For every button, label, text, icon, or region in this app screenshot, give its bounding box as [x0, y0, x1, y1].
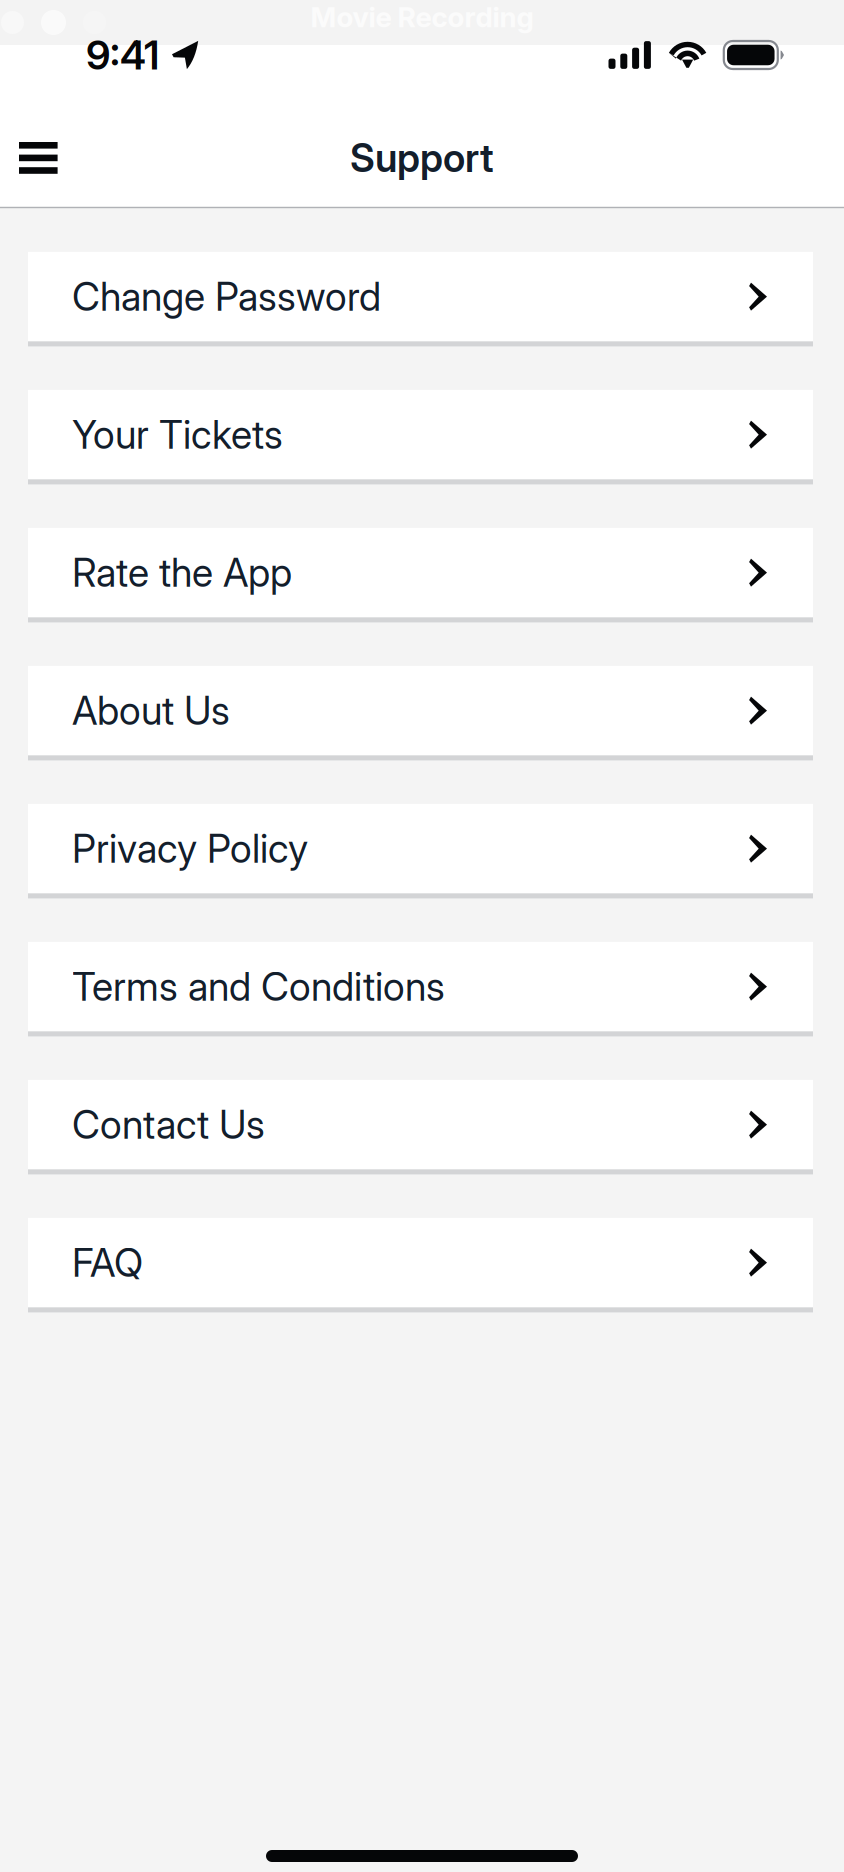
staticText: FAQ — [72, 1239, 143, 1286]
button[interactable]: Contact Us — [28, 1080, 813, 1174]
staticText: Contact Us — [72, 1101, 265, 1148]
button[interactable]: About Us — [28, 666, 813, 760]
staticText: Your Tickets — [72, 411, 283, 458]
staticText: Terms and Conditions — [72, 963, 445, 1010]
button[interactable]: Your Tickets — [28, 390, 813, 484]
staticText: 9:41 — [86, 31, 159, 79]
staticText: Change Password — [72, 273, 381, 320]
staticText: Support — [350, 135, 494, 181]
staticText: Rate the App — [72, 549, 292, 596]
button[interactable]: Menu — [0, 115, 86, 201]
staticText: About Us — [72, 687, 230, 734]
button[interactable]: Change Password — [28, 252, 813, 346]
button[interactable]: FAQ — [28, 1218, 813, 1312]
button[interactable]: Terms and Conditions — [28, 942, 813, 1036]
staticText: Movie Recording — [310, 0, 533, 34]
staticText: Privacy Policy — [72, 825, 308, 872]
button[interactable]: Rate the App — [28, 528, 813, 622]
button[interactable]: Privacy Policy — [28, 804, 813, 898]
